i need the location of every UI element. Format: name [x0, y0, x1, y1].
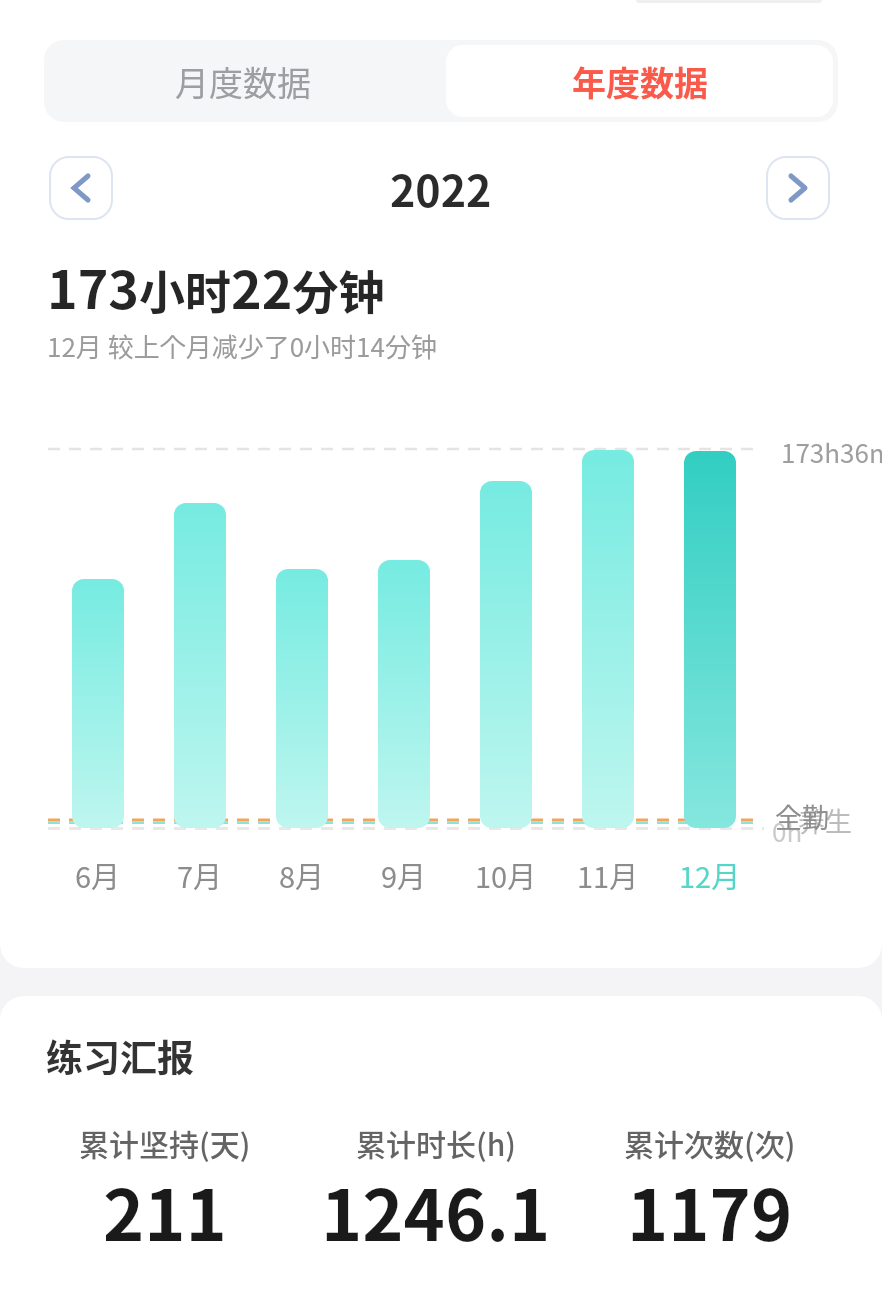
staticText: 累计次数(次) [624, 1121, 796, 1164]
button[interactable]: 9月 [354, 854, 454, 894]
staticText: 1179 [627, 1160, 793, 1261]
staticText: 11月 [577, 854, 639, 894]
staticText: 累计时长(h) [356, 1121, 516, 1164]
staticText: 养生 [798, 801, 852, 840]
staticText: 0h [772, 812, 803, 850]
staticText: 月度数据 [175, 57, 311, 106]
button[interactable]: 10月 [456, 854, 556, 894]
staticText: 173h36m [781, 433, 882, 471]
button[interactable]: 6月 [48, 854, 148, 894]
staticText: 累计坚持(天) [79, 1121, 251, 1164]
staticText: 12月 较上个月减少了0小时14分钟 [47, 327, 437, 365]
button[interactable]: 11月 [558, 854, 658, 894]
staticText: 8月 [279, 854, 325, 894]
button[interactable]: 12月 [660, 854, 760, 894]
staticText: 全勤 [775, 797, 829, 836]
button[interactable]: 累计坚持(天) [15, 1121, 315, 1167]
staticText: 6月 [75, 854, 121, 894]
staticText: 2022 [390, 157, 492, 219]
staticText: 练习汇报 [46, 1029, 194, 1083]
button[interactable] [49, 156, 113, 220]
button[interactable]: 累计时长(h) [286, 1121, 586, 1167]
button[interactable]: 7月 [150, 854, 250, 894]
button[interactable]: 年度数据 [446, 45, 833, 117]
staticText: 173小时22分钟 [47, 249, 385, 324]
button[interactable]: 月度数据 [44, 40, 441, 122]
staticText: 10月 [475, 854, 537, 894]
staticText: 9月 [381, 854, 427, 894]
staticText: 1246.1 [321, 1160, 551, 1261]
button[interactable]: 累计次数(次) [560, 1121, 860, 1167]
staticText: 7月 [177, 854, 223, 894]
staticText: 211 [103, 1160, 227, 1261]
button[interactable]: 8月 [252, 854, 352, 894]
staticText: 12月 [679, 854, 741, 894]
button[interactable] [766, 156, 830, 220]
staticText: 年度数据 [572, 57, 708, 106]
